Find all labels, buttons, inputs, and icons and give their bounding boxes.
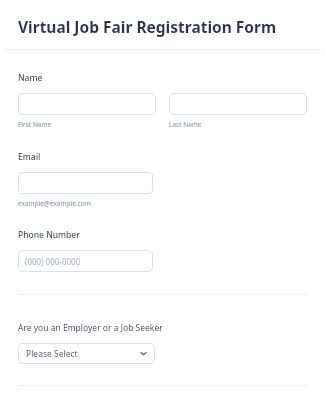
staticText: Name <box>18 72 43 84</box>
staticText: Last Name <box>169 120 202 129</box>
button[interactable]: (000) 000-0000 <box>18 250 153 272</box>
staticText: Virtual Job Fair Registration Form <box>18 16 277 37</box>
staticText: Are you an Employer or a Job Seeker <box>18 322 163 334</box>
button[interactable] <box>18 172 153 194</box>
button[interactable]: Please Select <box>18 343 155 364</box>
staticText: Phone Number <box>18 229 80 241</box>
staticText: example@example.com <box>18 199 91 208</box>
staticText: (000) 000-0000 <box>25 256 81 267</box>
staticText: Please Select <box>26 348 140 360</box>
button[interactable] <box>18 93 156 115</box>
button[interactable] <box>169 93 307 115</box>
staticText: Email <box>18 151 41 163</box>
staticText: First Name <box>18 120 52 129</box>
